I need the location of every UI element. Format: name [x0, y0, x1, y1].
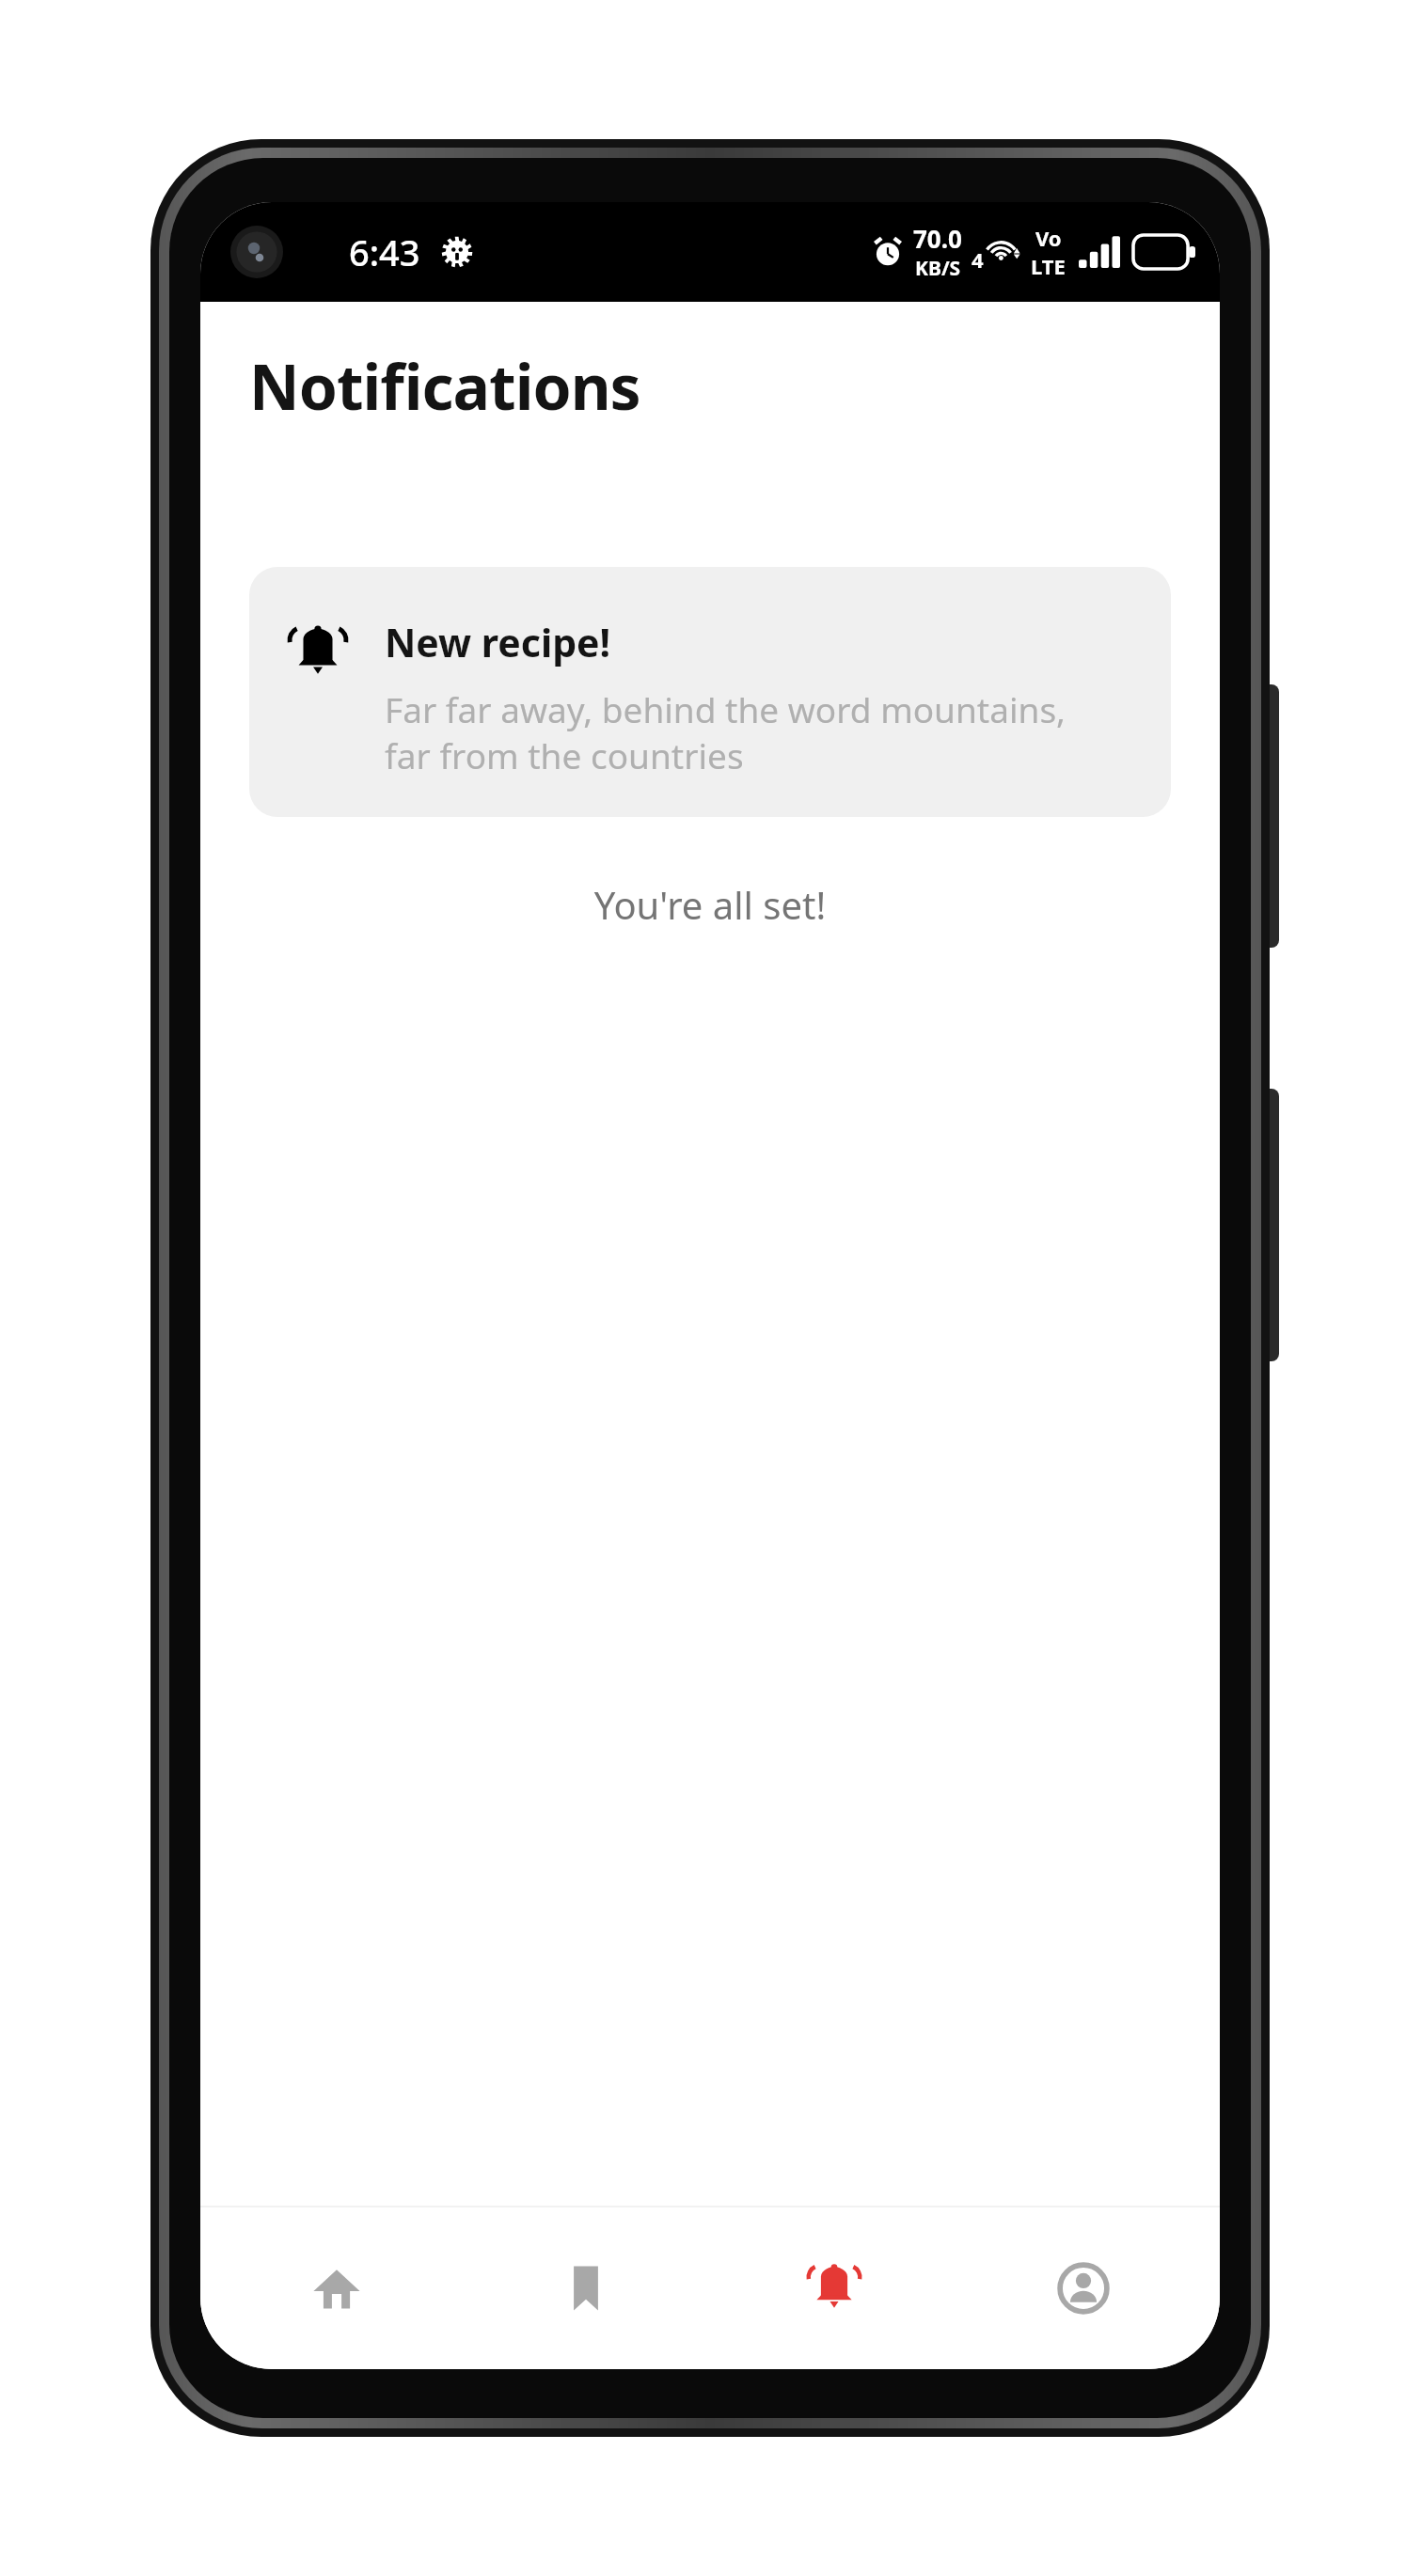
staticText: Far far away, behind the word mountains,… — [385, 685, 1066, 779]
staticText: 4 — [972, 245, 984, 274]
button[interactable]: New recipe! — [249, 567, 1171, 817]
button[interactable]: Profile — [971, 2207, 1196, 2369]
button[interactable]: Notifications — [721, 2207, 947, 2369]
staticText: 6:43 — [349, 228, 420, 276]
button[interactable]: Home — [224, 2207, 450, 2369]
staticText: KB/S — [915, 255, 961, 282]
staticText: New recipe! — [385, 616, 611, 668]
staticText: Vo — [1035, 224, 1062, 252]
staticText: 70.0 — [913, 222, 962, 255]
staticText: LTE — [1031, 252, 1066, 280]
button[interactable]: Bookmarks — [473, 2207, 699, 2369]
staticText: Notifications — [249, 343, 640, 428]
staticText: You're all set! — [200, 879, 1220, 930]
